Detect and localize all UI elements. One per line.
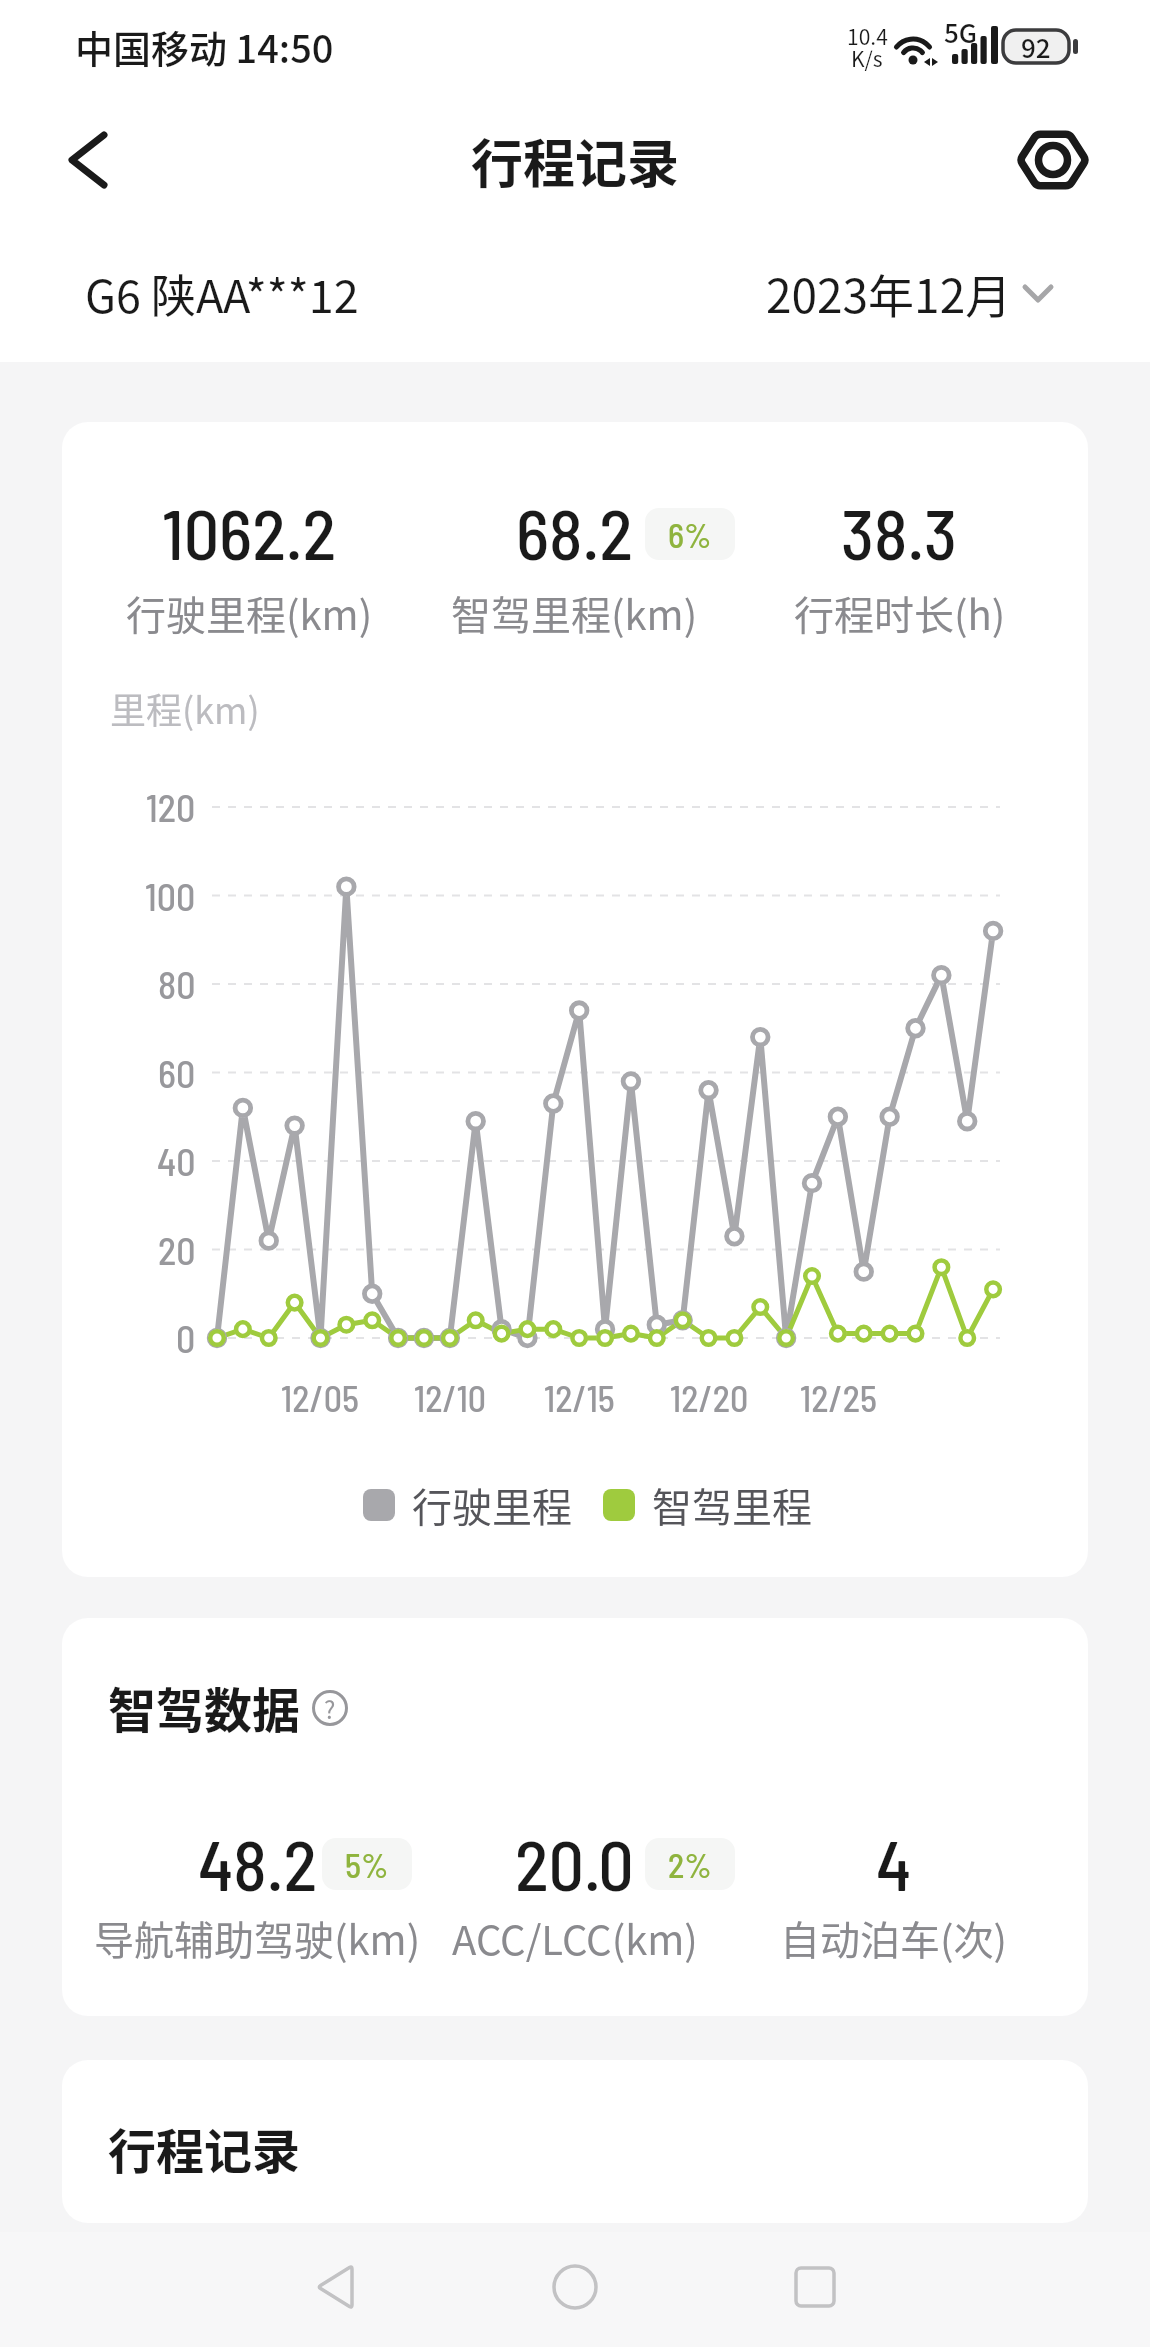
staticText: 行驶里程 (412, 1476, 572, 1534)
staticText: 20 (158, 1227, 196, 1273)
staticText: 38.3 (841, 490, 958, 574)
button[interactable]: ? (308, 1686, 352, 1730)
staticText: 12/05 (281, 1376, 359, 1419)
staticText: G6 陕AA***12 (85, 261, 359, 326)
staticText: 智驾数据 (108, 1672, 301, 1742)
staticText: 4 (876, 1821, 912, 1905)
staticText: 10.4 (847, 21, 888, 51)
staticText: 行驶里程(km) (126, 584, 373, 642)
staticText: 行程时长(h) (794, 584, 1006, 642)
staticText: 12/25 (800, 1376, 877, 1419)
staticText: K/s (851, 43, 883, 73)
staticText: 中国移动 14:50 (75, 19, 334, 74)
staticText: ? (324, 1691, 336, 1726)
staticText: 6% (668, 514, 712, 555)
staticText: 自动泊车(次) (780, 1909, 1008, 1967)
staticText: 80 (158, 961, 196, 1007)
button[interactable] (545, 2257, 605, 2317)
staticText: 行程记录 (108, 2113, 301, 2183)
staticText: 60 (158, 1050, 196, 1096)
button[interactable] (55, 125, 125, 195)
staticText: 5G (944, 13, 978, 51)
staticText: 12/15 (544, 1376, 615, 1419)
staticText: 100 (145, 873, 196, 919)
staticText: 智驾里程 (652, 1476, 812, 1534)
staticText: 92 (1021, 28, 1051, 66)
staticText: 12/20 (670, 1376, 749, 1419)
staticText: 40 (157, 1138, 196, 1184)
button[interactable] (1017, 124, 1089, 196)
staticText: 行程记录 (471, 123, 680, 198)
staticText: 0 (176, 1315, 196, 1361)
staticText: 导航辅助驾驶(km) (94, 1909, 421, 1967)
staticText: 20.0 (515, 1821, 634, 1905)
staticText: ACC/LCC(km) (452, 1909, 698, 1967)
staticText: 120 (146, 784, 196, 830)
staticText: 5% (345, 1844, 389, 1885)
staticText: 68.2 (516, 490, 633, 574)
staticText: 2023年12月 (766, 260, 1012, 327)
button[interactable]: 2023年12月 (760, 258, 1070, 328)
staticText: 12/10 (414, 1376, 487, 1419)
staticText: 里程(km) (110, 682, 260, 734)
staticText: 智驾里程(km) (451, 584, 698, 642)
button[interactable] (305, 2257, 365, 2317)
staticText: 1062.2 (162, 490, 337, 574)
staticText: 48.2 (198, 1821, 318, 1905)
staticText: 2% (668, 1844, 712, 1885)
button[interactable] (785, 2257, 845, 2317)
